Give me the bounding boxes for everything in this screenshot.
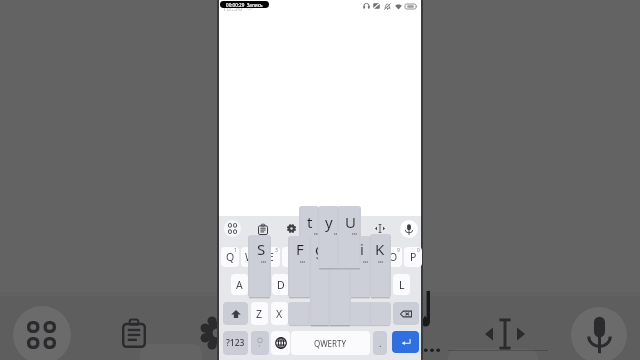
button[interactable]: Apps (224, 220, 241, 237)
button[interactable]: X (271, 302, 288, 325)
staticText: O (389, 250, 398, 264)
button[interactable]: Move cursor (372, 221, 388, 236)
button[interactable]: O (384, 247, 402, 267)
staticText: 10:50 (222, 2, 243, 13)
staticText: i (360, 239, 364, 259)
staticText: K (375, 239, 385, 259)
button[interactable]: W (241, 247, 259, 267)
button[interactable]: Change language (271, 331, 290, 355)
button[interactable]: Settings (284, 220, 299, 237)
button[interactable]: Voice input (400, 220, 418, 238)
button[interactable]: L (393, 274, 410, 295)
staticText: 9 (397, 247, 400, 254)
button[interactable]: Backspace (393, 302, 419, 325)
button[interactable]: QWERTY (291, 331, 370, 355)
button[interactable]: T (302, 247, 320, 267)
staticText: 5 (315, 247, 318, 254)
button[interactable]: Enter (392, 331, 419, 353)
staticText: A (236, 278, 243, 292)
staticText: W (245, 250, 255, 264)
button[interactable]: Z (251, 302, 268, 325)
button[interactable]: Apps (27, 321, 56, 349)
button[interactable]: D (272, 274, 289, 295)
staticText: Z (256, 307, 263, 321)
staticText: S (257, 239, 266, 259)
staticText: U (345, 212, 356, 232)
staticText: 0 (417, 247, 420, 254)
button[interactable]: Move cursor (485, 318, 525, 350)
button[interactable]: Emoji (251, 331, 269, 355)
staticText: 00:00:29 Запись (226, 2, 263, 8)
button[interactable]: Voice input (585, 316, 614, 354)
button[interactable]: . (373, 331, 387, 355)
button[interactable]: ?123 (223, 331, 248, 355)
staticText: Q (226, 250, 235, 264)
staticText: 8 (376, 247, 379, 254)
staticText: P (410, 250, 417, 264)
button[interactable]: I (363, 247, 381, 267)
staticText: 3 (275, 247, 278, 254)
staticText: X (276, 307, 283, 321)
staticText: 1 (234, 247, 237, 254)
button[interactable]: Clipboard (255, 220, 271, 238)
staticText: F (296, 239, 304, 259)
button[interactable]: Shift (223, 302, 248, 325)
staticText: E (268, 250, 274, 264)
staticText: L (399, 278, 405, 292)
button[interactable]: P (404, 247, 422, 267)
staticText: g (315, 239, 325, 259)
button[interactable]: E (262, 247, 280, 267)
staticText: t (307, 212, 313, 232)
button[interactable]: Clipboard (122, 319, 146, 348)
staticText: y (325, 212, 333, 232)
staticText: D (277, 278, 285, 292)
button[interactable]: A (231, 274, 248, 295)
staticText: ?123 (226, 337, 245, 349)
staticText: 4 (295, 247, 298, 254)
button[interactable]: R (282, 247, 300, 267)
button[interactable]: Q (221, 247, 239, 267)
staticText: . (379, 337, 382, 349)
staticText: QWERTY (314, 338, 347, 349)
